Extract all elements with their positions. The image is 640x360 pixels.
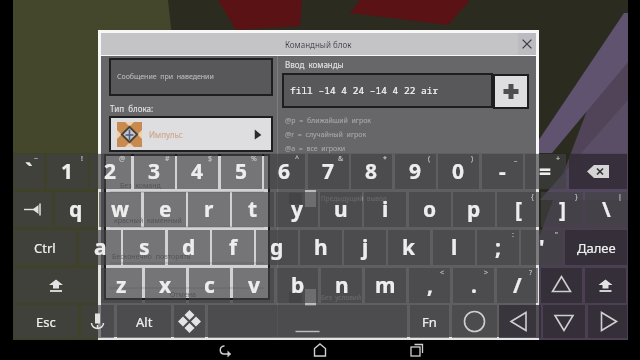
staticText: <	[440, 268, 445, 278]
button[interactable]: 5	[221, 154, 262, 189]
button[interactable]: tri-up	[541, 268, 582, 303]
button[interactable]: i	[364, 192, 406, 227]
button[interactable]: circle	[452, 305, 497, 338]
button[interactable]: o	[409, 192, 451, 227]
button[interactable]: '	[521, 230, 563, 265]
button[interactable]: v	[233, 268, 274, 303]
button[interactable]: Close	[518, 33, 536, 55]
button[interactable]: dpad	[174, 305, 205, 338]
button[interactable]: u	[320, 192, 362, 227]
staticText: d	[182, 233, 196, 262]
button[interactable]: shift	[585, 268, 626, 303]
button[interactable]: mic	[81, 305, 114, 338]
button[interactable]: 9	[395, 154, 436, 189]
button[interactable]: c	[189, 268, 230, 303]
staticText: ]	[559, 195, 566, 224]
button[interactable]: j	[344, 230, 386, 265]
button[interactable]: Импульс	[111, 118, 271, 150]
button[interactable]: l	[433, 230, 475, 265]
button[interactable]: Fn	[410, 305, 449, 338]
staticText: s	[139, 233, 150, 262]
button[interactable]: [	[497, 192, 539, 227]
button[interactable]: 7	[308, 154, 349, 189]
button[interactable]: y	[276, 192, 318, 227]
button[interactable]: q	[55, 192, 97, 227]
button[interactable]: Home	[275, 340, 365, 360]
button[interactable]: tri-r	[588, 305, 627, 338]
button[interactable]: Ctrl	[14, 230, 76, 265]
staticText: )	[471, 154, 474, 164]
button[interactable]: h	[300, 230, 342, 265]
button[interactable]: 8	[351, 154, 392, 189]
button[interactable]: Recents	[372, 340, 462, 360]
staticText: a	[94, 233, 107, 262]
button[interactable]: e	[144, 192, 186, 227]
button[interactable]: \	[585, 192, 627, 227]
button[interactable]: Сообщение при наведении	[111, 60, 271, 94]
button[interactable]: m	[365, 268, 406, 303]
button[interactable]: r	[188, 192, 230, 227]
button[interactable]: `	[14, 154, 44, 189]
staticText: "	[555, 230, 558, 240]
staticText: ?	[529, 268, 533, 278]
staticText: !	[81, 154, 83, 164]
button[interactable]: t	[232, 192, 274, 227]
button[interactable]: a	[79, 230, 121, 265]
staticText: q	[69, 195, 83, 224]
button[interactable]: tab	[14, 192, 52, 227]
button[interactable]: Add command	[495, 76, 527, 107]
button[interactable]: space	[208, 305, 407, 338]
staticText: Ctrl	[34, 239, 56, 257]
button[interactable]: tri-d	[543, 305, 585, 338]
staticText: +	[556, 154, 561, 164]
button[interactable]: s	[123, 230, 165, 265]
staticText: z	[116, 271, 127, 300]
staticText: '	[539, 233, 545, 262]
button[interactable]: g	[256, 230, 298, 265]
button[interactable]: 6	[264, 154, 305, 189]
button[interactable]: w	[99, 192, 141, 227]
staticText: ^	[295, 154, 300, 164]
button[interactable]: .	[453, 268, 494, 303]
staticText: Сообщение при наведении	[117, 72, 214, 82]
staticText: #	[165, 154, 170, 164]
button[interactable]: 2	[90, 154, 131, 189]
button[interactable]: ]	[541, 192, 583, 227]
button[interactable]: /	[497, 268, 538, 303]
staticText: -	[499, 157, 506, 186]
button[interactable]: shift	[14, 268, 98, 303]
staticText: Отмена	[170, 290, 197, 300]
staticText: /	[513, 271, 522, 300]
staticText: 8	[365, 157, 378, 186]
button[interactable]: Back	[180, 340, 270, 360]
button[interactable]: d	[168, 230, 210, 265]
button[interactable]: Alt	[117, 305, 171, 338]
staticText: Alt	[136, 313, 153, 331]
button[interactable]: bksp	[569, 154, 627, 189]
staticText: 6	[278, 157, 291, 186]
button[interactable]: b	[277, 268, 318, 303]
staticText: o	[423, 195, 437, 224]
button[interactable]: x	[145, 268, 186, 303]
staticText: k	[402, 233, 416, 262]
button[interactable]: ,	[409, 268, 450, 303]
button[interactable]: p	[453, 192, 495, 227]
button[interactable]: 4	[177, 154, 218, 189]
button[interactable]: fill –14 4 24 –14 4 22 air	[284, 75, 491, 106]
button[interactable]: Далее	[565, 230, 627, 265]
button[interactable]: 3	[134, 154, 175, 189]
button[interactable]: z	[101, 268, 142, 303]
button[interactable]: k	[388, 230, 430, 265]
button[interactable]: 1	[47, 154, 88, 189]
button[interactable]: 0	[438, 154, 479, 189]
staticText: u	[334, 195, 348, 224]
button[interactable]: f	[212, 230, 254, 265]
staticText: (	[428, 154, 431, 164]
button[interactable]: tri-l	[499, 305, 541, 338]
button[interactable]: =	[525, 154, 566, 189]
button[interactable]: -	[482, 154, 523, 189]
staticText: _	[514, 154, 518, 164]
button[interactable]: n	[321, 268, 362, 303]
button[interactable]: ;	[477, 230, 519, 265]
button[interactable]: Esc	[14, 305, 78, 338]
